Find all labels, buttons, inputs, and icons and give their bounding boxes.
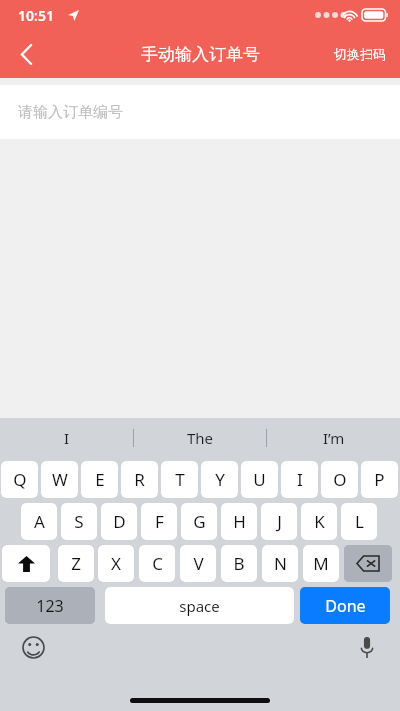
button[interactable]: X (98, 545, 134, 582)
button[interactable]: J (261, 503, 297, 540)
button[interactable]: A (21, 503, 57, 540)
staticText: W (52, 468, 68, 491)
staticText: O (333, 468, 347, 491)
button[interactable]: Done (300, 587, 390, 624)
staticText: I (64, 428, 70, 448)
staticText: P (374, 468, 385, 491)
staticText: Q (13, 468, 27, 491)
button[interactable]: Z (58, 545, 94, 582)
staticText: G (193, 510, 206, 533)
button[interactable]: I (0, 418, 134, 458)
button[interactable]: C (139, 545, 175, 582)
staticText: Z (71, 552, 81, 575)
button[interactable]: Backspace (344, 545, 392, 582)
staticText: X (111, 552, 121, 575)
staticText: N (274, 552, 287, 575)
staticText: B (233, 552, 245, 575)
button[interactable]: M (303, 545, 339, 582)
staticText: E (95, 468, 105, 491)
button[interactable]: W (41, 461, 78, 498)
button[interactable]: D (101, 503, 137, 540)
button[interactable]: V (180, 545, 216, 582)
button[interactable]: K (301, 503, 337, 540)
staticText: D (113, 510, 126, 533)
button[interactable]: E (81, 461, 118, 498)
staticText: R (134, 468, 145, 491)
staticText: I (297, 468, 303, 491)
staticText: 手动输入订单号 (141, 44, 260, 65)
staticText: U (253, 468, 266, 491)
staticText: 请输入订单编号 (18, 103, 123, 122)
button[interactable]: Shift (2, 545, 50, 582)
staticText: T (175, 468, 185, 491)
staticText: L (355, 510, 364, 533)
button[interactable]: I’m (267, 418, 400, 458)
button[interactable]: I (281, 461, 318, 498)
button[interactable]: G (181, 503, 217, 540)
button[interactable]: space (105, 587, 294, 624)
button[interactable]: N (262, 545, 298, 582)
staticText: J (277, 510, 282, 533)
button[interactable]: S (61, 503, 97, 540)
staticText: M (313, 552, 329, 575)
button[interactable]: O (321, 461, 358, 498)
button[interactable]: U (241, 461, 278, 498)
button[interactable]: F (141, 503, 177, 540)
staticText: 10:51 (18, 6, 54, 25)
staticText: 123 (36, 595, 64, 617)
button[interactable]: 请输入订单编号 (0, 85, 400, 139)
button[interactable]: P (361, 461, 398, 498)
button[interactable]: Dictation (354, 634, 380, 660)
button[interactable]: 123 (5, 587, 95, 624)
staticText: space (179, 596, 220, 616)
staticText: A (34, 510, 45, 533)
button[interactable]: B (221, 545, 257, 582)
staticText: S (74, 510, 84, 533)
button[interactable]: T (161, 461, 198, 498)
button[interactable]: L (341, 503, 377, 540)
staticText: V (193, 552, 204, 575)
button[interactable]: The (134, 418, 267, 458)
staticText: The (187, 428, 214, 448)
staticText: Y (215, 468, 225, 491)
staticText: Done (325, 595, 366, 617)
button[interactable]: 切换扫码 (320, 30, 400, 78)
staticText: 切换扫码 (334, 46, 386, 62)
button[interactable]: Emoji (20, 634, 46, 660)
staticText: K (314, 510, 325, 533)
staticText: F (155, 510, 164, 533)
staticText: I’m (323, 428, 345, 448)
staticText: C (152, 552, 163, 575)
button[interactable]: H (221, 503, 257, 540)
button[interactable]: Q (1, 461, 38, 498)
button[interactable]: Y (201, 461, 238, 498)
staticText: H (233, 510, 246, 533)
button[interactable]: Back (0, 30, 52, 78)
button[interactable]: R (121, 461, 158, 498)
